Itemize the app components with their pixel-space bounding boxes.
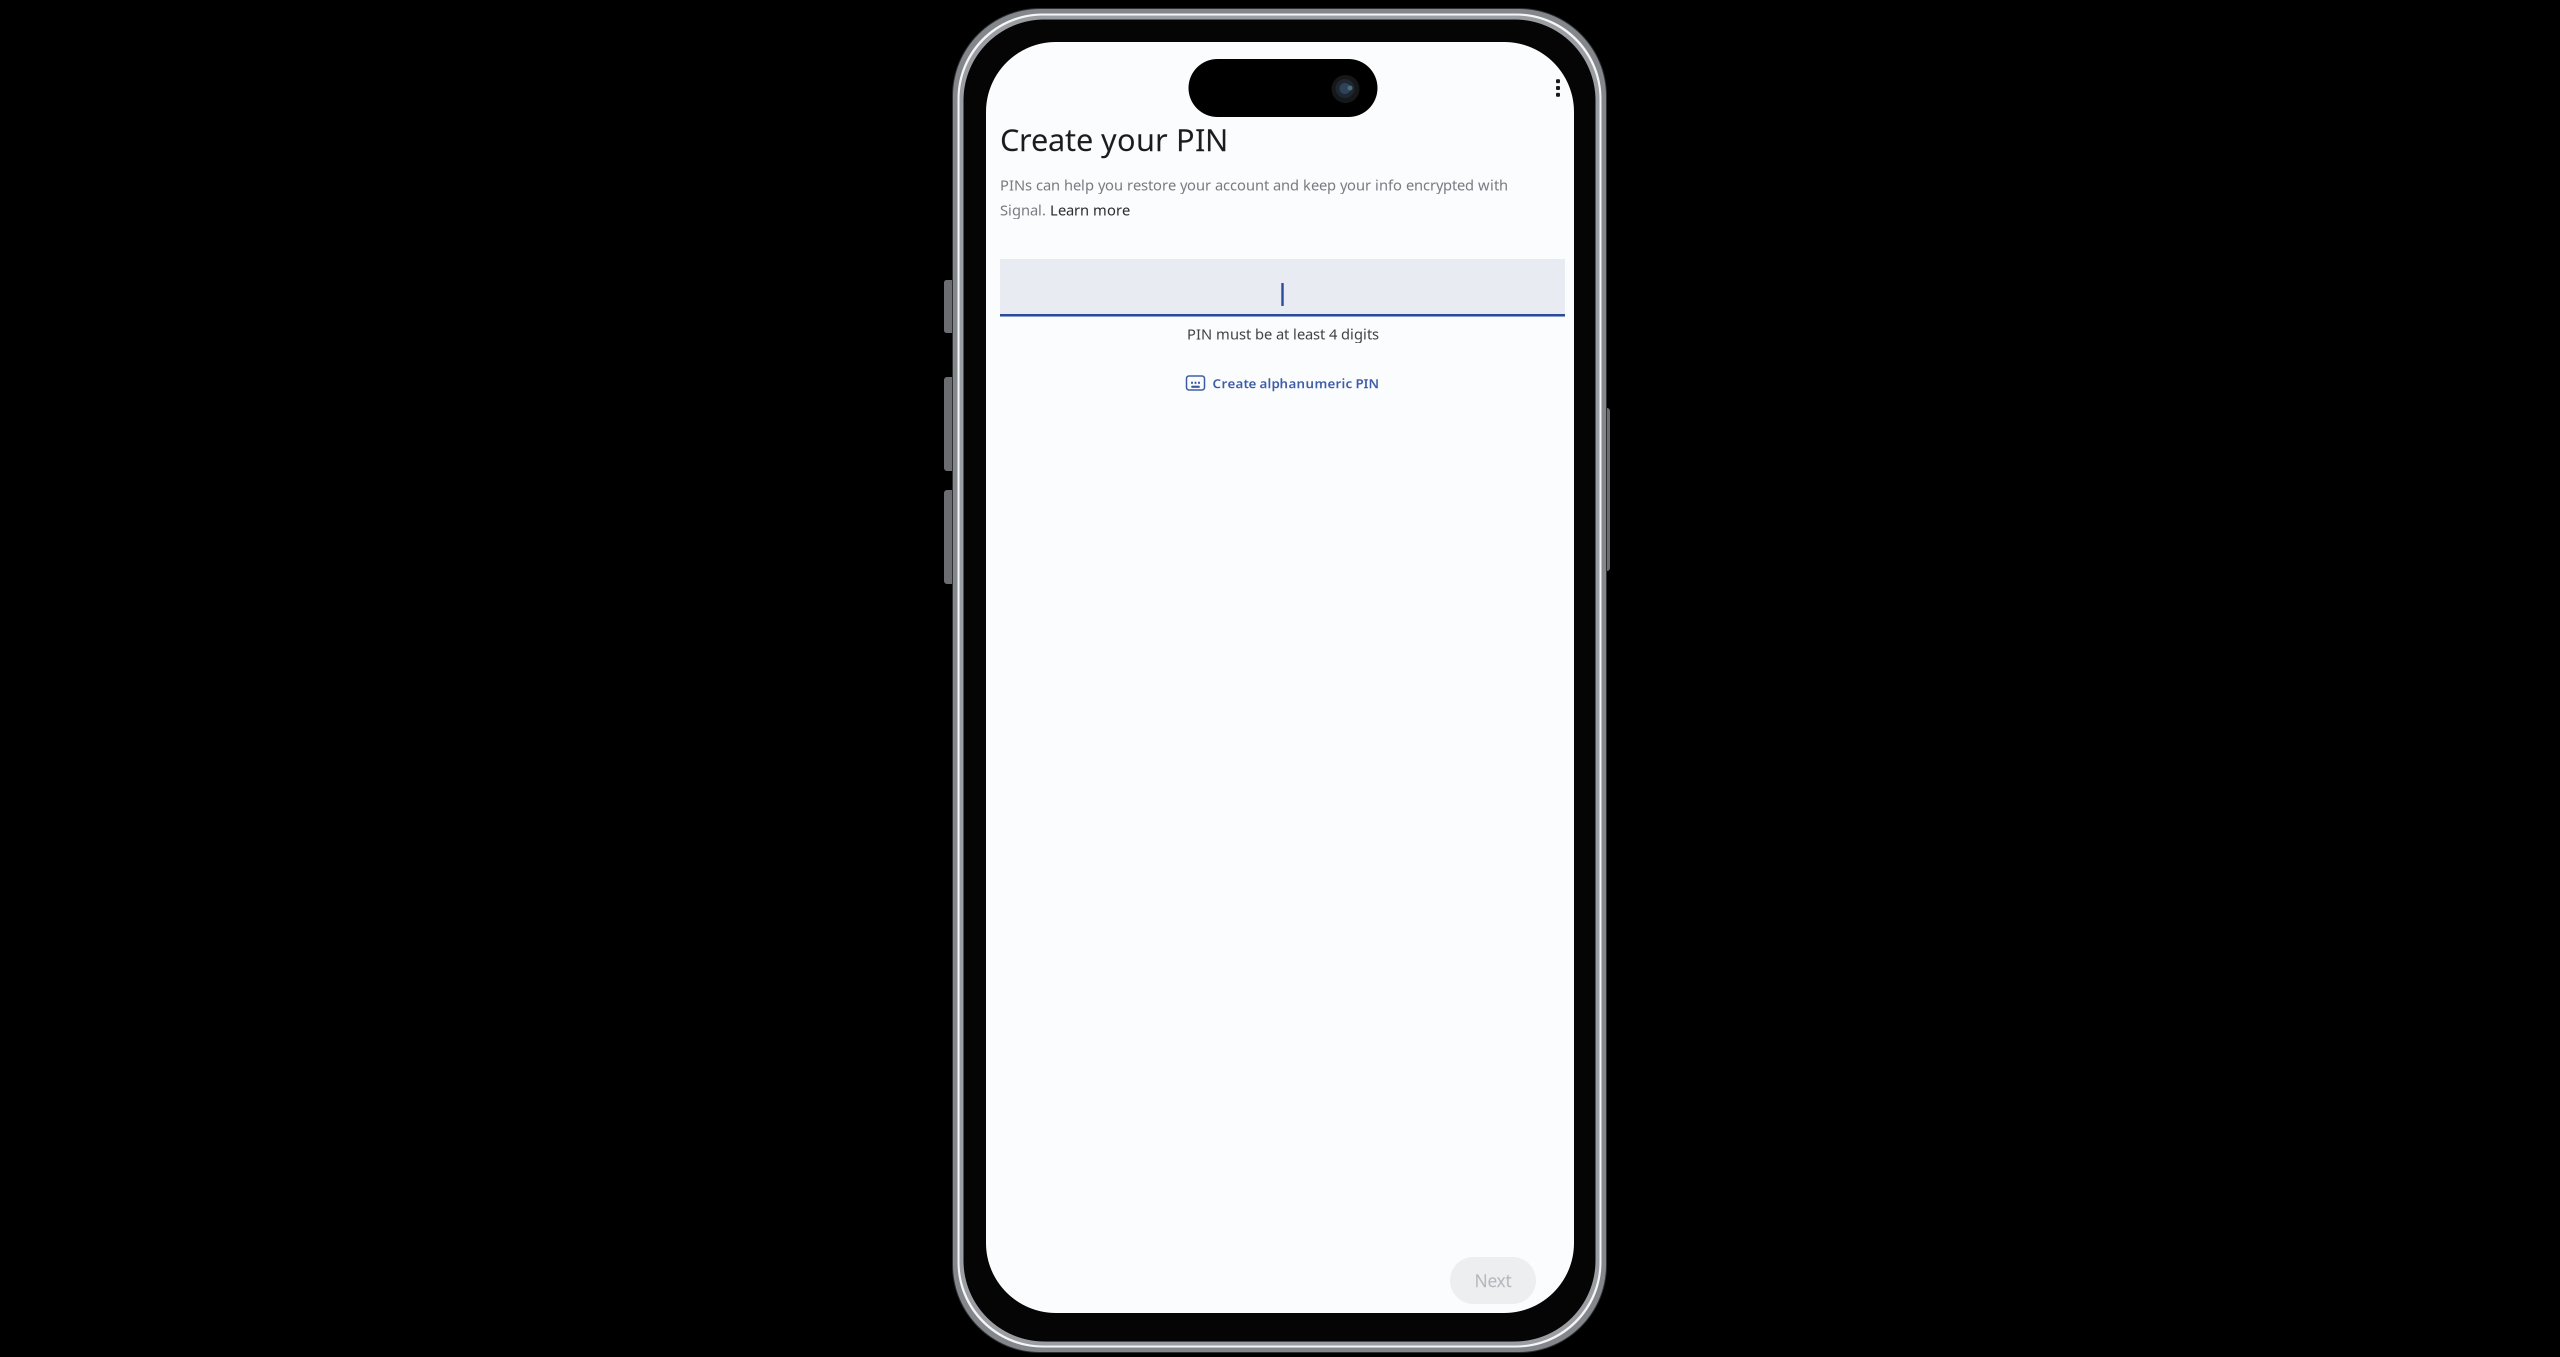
staticText: Next [1474,1269,1511,1292]
button[interactable]: Create alphanumeric PIN [989,368,1577,398]
staticText: Learn more [1050,200,1130,219]
button[interactable]: Next [1450,1257,1536,1304]
staticText: Create your PIN [1000,119,1228,160]
button[interactable]: Learn more [1050,200,1130,219]
staticText: Signal. [1000,200,1050,219]
staticText: PINs can help you restore your account a… [1000,175,1508,194]
staticText: Create alphanumeric PIN [1212,374,1379,392]
button[interactable]: More options [1536,66,1580,110]
staticText: PIN must be at least 4 digits [1187,324,1379,343]
